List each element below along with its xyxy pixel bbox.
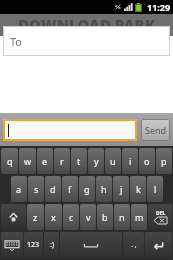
button[interactable]: a bbox=[11, 176, 27, 202]
staticText: 11:29 bbox=[147, 1, 171, 13]
staticText: z bbox=[33, 211, 38, 223]
button[interactable]: f bbox=[62, 176, 78, 202]
button[interactable]: s bbox=[28, 176, 44, 202]
staticText: . , bbox=[131, 240, 137, 250]
staticText: DEL bbox=[156, 210, 166, 217]
button[interactable]: Space bbox=[60, 232, 122, 258]
button[interactable]: Enter bbox=[145, 232, 172, 258]
button[interactable]: :) bbox=[44, 232, 59, 258]
button[interactable]: t bbox=[71, 148, 87, 174]
button[interactable]: 123 bbox=[24, 232, 43, 258]
staticText: k bbox=[136, 183, 141, 195]
button[interactable]: x bbox=[45, 204, 62, 230]
button[interactable]: d bbox=[45, 176, 61, 202]
staticText: q bbox=[7, 155, 13, 167]
staticText: v bbox=[86, 211, 91, 223]
button[interactable]: c bbox=[63, 204, 79, 230]
button[interactable]: e bbox=[37, 148, 53, 174]
button[interactable] bbox=[3, 119, 137, 141]
button[interactable]: Shift bbox=[1, 204, 26, 230]
staticText: x bbox=[51, 211, 56, 223]
button[interactable]: r bbox=[54, 148, 70, 174]
button[interactable]: h bbox=[96, 176, 112, 202]
button[interactable]: g bbox=[79, 176, 95, 202]
staticText: y bbox=[94, 155, 99, 167]
button[interactable]: n bbox=[114, 204, 130, 230]
button[interactable]: i bbox=[122, 148, 138, 174]
staticText: :) bbox=[50, 240, 54, 250]
button[interactable]: k bbox=[130, 176, 146, 202]
button[interactable]: m bbox=[131, 204, 147, 230]
button[interactable]: j bbox=[113, 176, 129, 202]
staticText: b bbox=[102, 211, 108, 223]
staticText: l bbox=[154, 183, 157, 195]
button[interactable]: q bbox=[1, 148, 18, 174]
staticText: n bbox=[119, 211, 125, 223]
button[interactable]: o bbox=[139, 148, 155, 174]
button[interactable]: Delete bbox=[148, 204, 172, 230]
staticText: p bbox=[161, 155, 167, 167]
staticText: c bbox=[69, 211, 74, 223]
button[interactable]: To bbox=[3, 26, 170, 56]
staticText: To bbox=[10, 34, 23, 49]
staticText: s bbox=[34, 183, 39, 195]
button[interactable]: b bbox=[97, 204, 113, 230]
staticText: d bbox=[50, 183, 56, 195]
staticText: m bbox=[135, 211, 144, 223]
staticText: r bbox=[60, 155, 64, 167]
button[interactable]: Send bbox=[141, 119, 170, 141]
staticText: o bbox=[144, 155, 150, 167]
staticText: h bbox=[101, 183, 107, 195]
button[interactable]: u bbox=[105, 148, 121, 174]
staticText: u bbox=[110, 155, 116, 167]
staticText: 123 bbox=[27, 240, 40, 250]
staticText: j bbox=[120, 183, 123, 195]
button[interactable]: . , bbox=[123, 232, 144, 258]
staticText: a bbox=[16, 183, 22, 195]
staticText: t bbox=[77, 155, 81, 167]
button[interactable]: y bbox=[88, 148, 104, 174]
staticText: e bbox=[42, 155, 48, 167]
staticText: f bbox=[68, 183, 72, 195]
button[interactable]: Keyboard settings bbox=[1, 232, 23, 258]
staticText: g bbox=[84, 183, 90, 195]
staticText: i bbox=[129, 155, 132, 167]
button[interactable]: p bbox=[156, 148, 172, 174]
button[interactable]: w bbox=[19, 148, 36, 174]
staticText: w bbox=[24, 155, 32, 167]
staticText: Send bbox=[145, 124, 167, 136]
button[interactable]: z bbox=[27, 204, 44, 230]
button[interactable]: l bbox=[147, 176, 163, 202]
button[interactable]: v bbox=[80, 204, 96, 230]
staticText: DOWNLOAD PARK bbox=[18, 15, 155, 35]
